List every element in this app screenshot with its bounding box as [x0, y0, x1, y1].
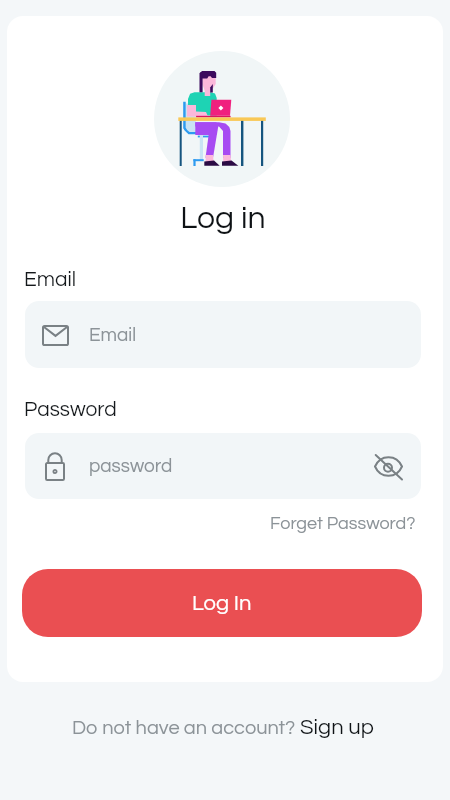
- staticText: password: [89, 456, 173, 476]
- staticText: Password: [24, 399, 117, 421]
- button[interactable]: Show password: [364, 442, 412, 490]
- button[interactable]: password: [25, 433, 421, 499]
- staticText: Do not have an account?: [72, 718, 296, 739]
- button[interactable]: Email: [25, 301, 421, 368]
- staticText: Email: [24, 269, 77, 291]
- staticText: Log in: [7, 202, 441, 235]
- button[interactable]: Sign up: [300, 716, 374, 739]
- staticText: Log In: [192, 592, 252, 615]
- button[interactable]: Forget Password?: [270, 514, 416, 533]
- staticText: Email: [89, 325, 137, 345]
- button[interactable]: Log In: [22, 569, 422, 637]
